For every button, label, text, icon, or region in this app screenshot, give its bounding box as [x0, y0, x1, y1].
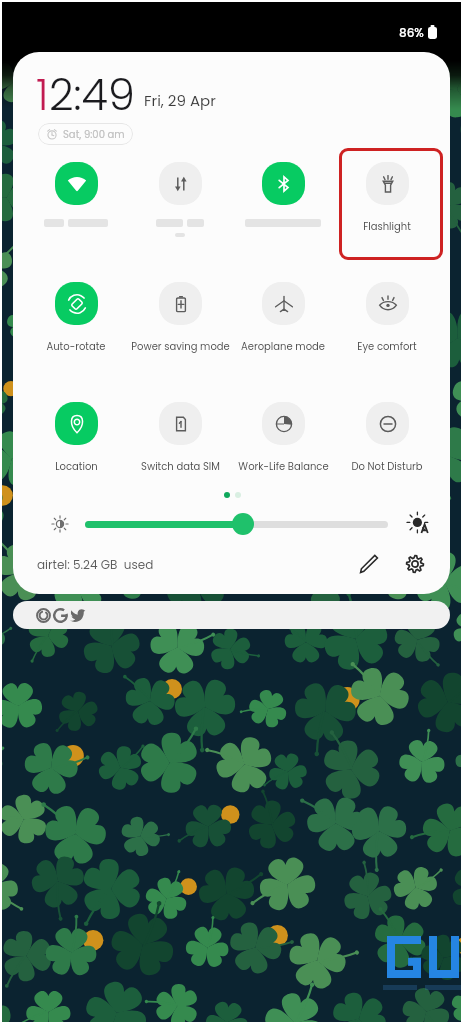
staticText: Do Not Disturb — [351, 459, 423, 473]
staticText: 1 — [36, 65, 49, 125]
button[interactable] — [231, 402, 335, 462]
staticText: Sat, 9:00 am — [63, 127, 125, 141]
button[interactable] — [231, 282, 335, 342]
button[interactable]: Quick setting toggle — [231, 162, 335, 222]
staticText: 2:49 — [49, 65, 135, 125]
staticText: Work-Life Balance — [238, 459, 329, 473]
button[interactable] — [128, 402, 232, 462]
staticText: Fri, 29 Apr — [144, 90, 216, 111]
button[interactable] — [128, 282, 232, 342]
button[interactable] — [24, 402, 128, 462]
staticText: Auto-rotate — [46, 339, 106, 353]
button[interactable]: Settings — [401, 550, 429, 578]
staticText: Eye comfort — [357, 339, 417, 353]
staticText: Flashlight — [363, 219, 411, 233]
button[interactable]: Sat, 9:00 am — [38, 123, 133, 145]
staticText: Power saving mode — [131, 339, 230, 353]
button[interactable]: Brightness — [232, 513, 254, 535]
staticText: Location — [55, 459, 98, 473]
button[interactable] — [335, 162, 439, 222]
staticText: airtel: 5.24 GB used — [37, 556, 154, 573]
button[interactable]: Quick setting toggle — [128, 162, 232, 222]
button[interactable]: Edit — [355, 550, 383, 578]
staticText: Aeroplane mode — [241, 339, 325, 353]
staticText: Switch data SIM — [141, 459, 220, 473]
button[interactable] — [335, 402, 439, 462]
button[interactable]: Notifications — [13, 601, 450, 629]
button[interactable]: Quick setting toggle — [24, 162, 128, 222]
button[interactable] — [335, 282, 439, 342]
staticText: 86% — [399, 24, 424, 41]
button[interactable] — [24, 282, 128, 342]
